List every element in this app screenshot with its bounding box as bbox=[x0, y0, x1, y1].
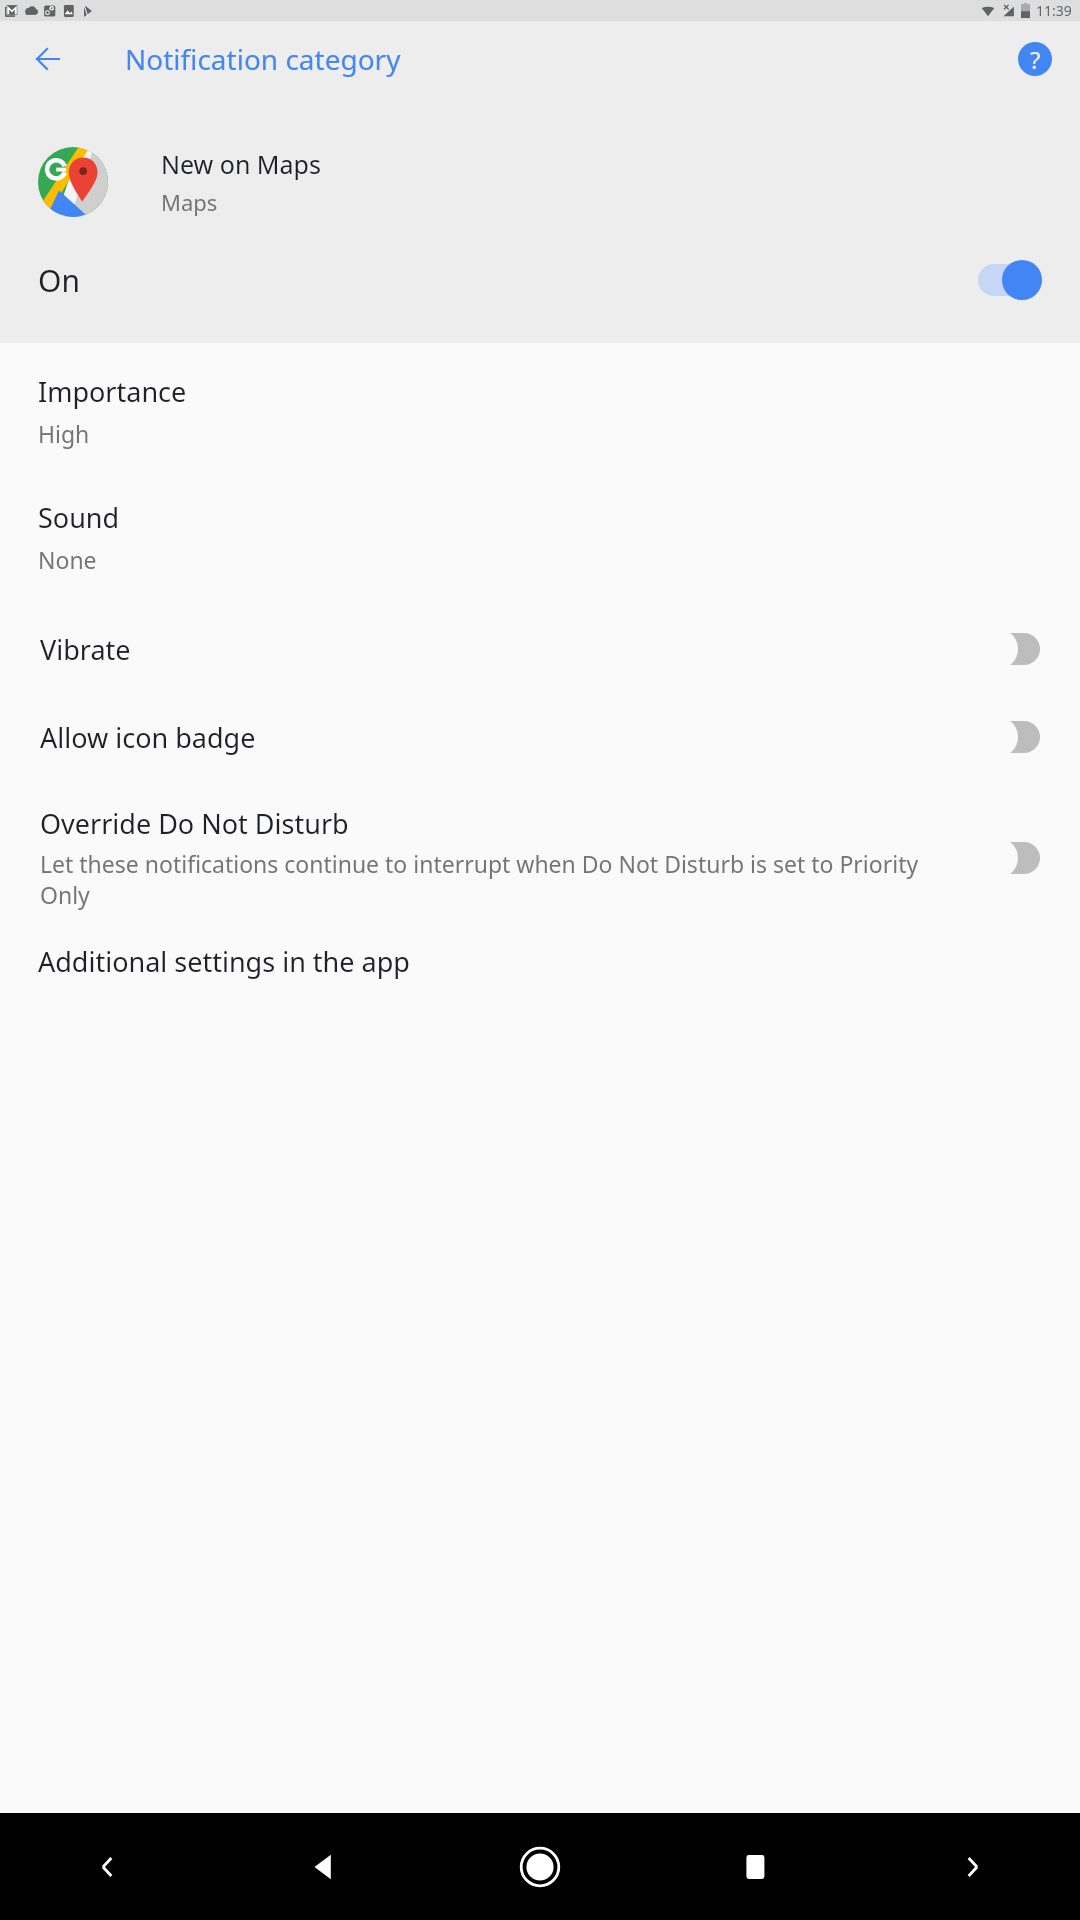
staticText: None bbox=[38, 544, 97, 575]
button[interactable]: Home bbox=[432, 1813, 648, 1920]
staticText: On bbox=[38, 260, 974, 301]
staticText: Allow icon badge bbox=[40, 719, 256, 756]
staticText: ? bbox=[1030, 43, 1041, 76]
button[interactable]: Importance bbox=[0, 343, 1080, 455]
staticText: Additional settings in the app bbox=[38, 943, 410, 980]
staticText: Notification category bbox=[125, 40, 401, 78]
button[interactable]: Allow icon badge bbox=[0, 673, 1080, 761]
button[interactable]: Help bbox=[1012, 36, 1058, 82]
staticText: Importance bbox=[38, 373, 187, 410]
staticText: New on Maps bbox=[161, 147, 321, 181]
button[interactable]: Additional settings in the app bbox=[0, 915, 1080, 1000]
staticText: Vibrate bbox=[40, 631, 131, 668]
staticText: High bbox=[38, 418, 90, 449]
staticText: 11:39 bbox=[1036, 1, 1072, 20]
button[interactable]: Back bbox=[216, 1813, 432, 1920]
staticText: Maps bbox=[161, 187, 218, 217]
button[interactable]: Recents bbox=[648, 1813, 864, 1920]
button[interactable]: Override Do Not Disturb bbox=[0, 761, 1080, 915]
staticText: Override Do Not Disturb bbox=[40, 805, 349, 842]
button[interactable]: Back bbox=[24, 35, 72, 83]
button[interactable]: Sound bbox=[0, 455, 1080, 581]
staticText: Let these notifications continue to inte… bbox=[40, 848, 954, 911]
button[interactable]: On bbox=[0, 217, 1080, 343]
button[interactable]: Vibrate bbox=[0, 581, 1080, 673]
staticText: Sound bbox=[38, 499, 120, 536]
button[interactable]: Next bbox=[864, 1813, 1080, 1920]
button[interactable]: Previous bbox=[0, 1813, 216, 1920]
